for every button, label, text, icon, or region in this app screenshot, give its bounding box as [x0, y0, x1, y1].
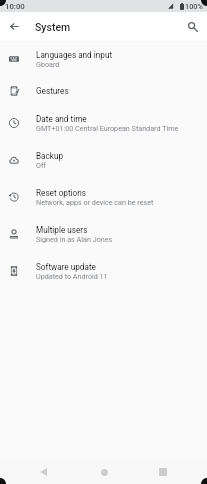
staticText: 100%	[185, 2, 203, 11]
staticText: Updated to Android 11	[36, 272, 108, 280]
button[interactable]: Gestures	[0, 78, 207, 105]
staticText: Signed in as Alan Jones	[36, 235, 113, 243]
staticText: Languages and input	[36, 50, 113, 60]
staticText: Multiple users	[36, 225, 88, 235]
staticText: GMT+01:00 Central European Standard Time	[36, 124, 179, 132]
staticText: Backup	[36, 151, 64, 161]
staticText: Date and time	[36, 114, 87, 124]
staticText: 10:00	[5, 2, 25, 11]
staticText: Gestures	[36, 86, 69, 96]
staticText: Gboard	[36, 60, 60, 68]
button[interactable]: Home	[92, 460, 116, 484]
button[interactable]: Recent apps	[151, 460, 175, 484]
button[interactable]: Languages and input	[0, 41, 207, 78]
button[interactable]: Search settings	[181, 15, 204, 38]
staticText: Network, apps or device can be reset	[36, 198, 154, 206]
button[interactable]: Reset options	[0, 179, 207, 216]
button[interactable]: Backup	[0, 142, 207, 179]
staticText: Software update	[36, 262, 96, 272]
staticText: Reset options	[36, 188, 87, 198]
button[interactable]: Back	[31, 460, 55, 484]
staticText: System	[35, 21, 71, 33]
button[interactable]: Navigate up	[3, 15, 26, 38]
button[interactable]: Multiple users	[0, 216, 207, 253]
button[interactable]: Date and time	[0, 105, 207, 142]
staticText: Off	[36, 161, 46, 169]
button[interactable]: Software update	[0, 253, 207, 290]
